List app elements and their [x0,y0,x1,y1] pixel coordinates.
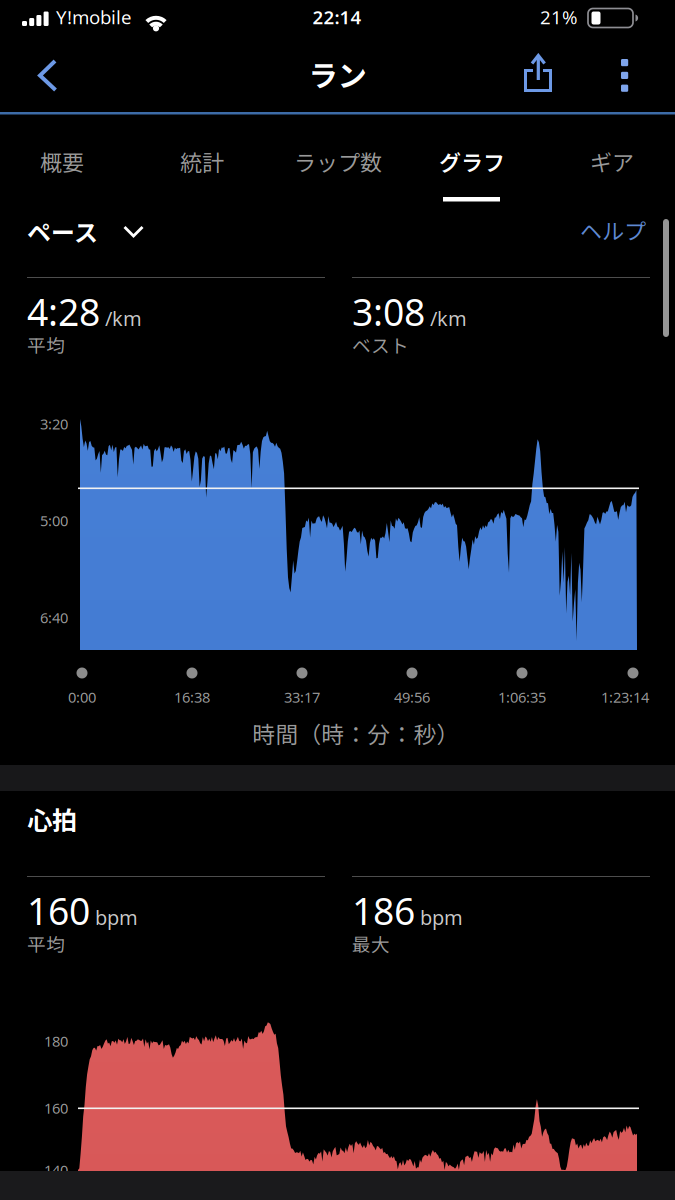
staticText: 平均 [27,331,65,358]
staticText: 1:06:35 [498,687,546,707]
staticText: 21% [540,5,578,29]
staticText: ラップ数 [294,146,382,177]
staticText: 49:56 [394,687,430,707]
staticText: 16:38 [174,687,210,707]
staticText: 4:28 [27,287,100,336]
button[interactable]: 統計 [140,136,264,186]
staticText: 3:20 [40,414,68,433]
staticText: 140 [44,1160,68,1180]
staticText: 6:40 [40,608,68,627]
staticText: 186 [352,886,415,935]
staticText: 心拍 [27,801,77,837]
button[interactable]: グラフ [410,136,534,186]
staticText: ギア [590,146,634,177]
staticText: ベスト [352,331,409,358]
staticText: /km [430,305,467,331]
button[interactable]: ラップ数 [276,136,400,186]
button[interactable]: ヘルプ [554,211,646,249]
button[interactable]: More [603,44,647,100]
staticText: 33:17 [284,687,320,707]
staticText: 160 [27,886,90,935]
button[interactable]: 概要 [0,136,124,186]
staticText: 0:00 [68,687,96,707]
button[interactable]: Back [20,44,76,100]
staticText: 3:08 [352,287,425,336]
staticText: 時間（時：分：秒） [252,717,459,749]
staticText: bpm [95,904,138,930]
staticText: ラン [308,53,366,95]
staticText: グラフ [439,146,505,177]
staticText: 160 [44,1098,68,1118]
staticText: 22:14 [312,5,361,29]
button[interactable]: Share [510,44,566,100]
staticText: Y!mobile [56,5,132,29]
staticText: bpm [420,904,463,930]
button[interactable]: ギア [550,136,674,186]
staticText: ヘルプ [580,214,646,246]
staticText: /km [105,305,142,331]
staticText: 概要 [40,146,84,177]
staticText: 平均 [27,930,65,957]
button[interactable]: ペース [27,212,144,250]
staticText: 180 [44,1031,68,1051]
staticText: 統計 [180,146,224,177]
staticText: 1:23:14 [601,687,649,707]
staticText: 5:00 [40,511,68,530]
staticText: 最大 [352,930,390,957]
staticText: ペース [27,214,98,248]
